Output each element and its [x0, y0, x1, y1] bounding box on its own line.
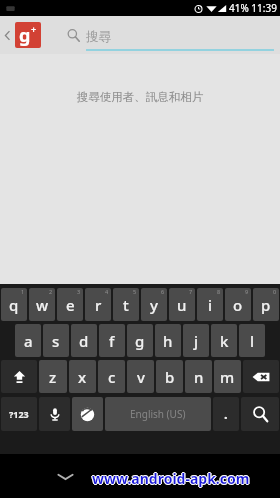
- staticText: h: [163, 331, 173, 351]
- staticText: b: [165, 367, 175, 387]
- button[interactable]: 6: [141, 288, 167, 321]
- button[interactable]: 4: [85, 288, 111, 321]
- button[interactable]: d: [71, 324, 97, 357]
- button[interactable]: English (US): [105, 397, 211, 431]
- staticText: i: [208, 295, 213, 315]
- button[interactable]: x: [69, 360, 96, 393]
- staticText: p: [261, 295, 271, 315]
- button[interactable]: 1: [1, 288, 27, 321]
- staticText: +: [31, 23, 37, 35]
- button[interactable]: ?123: [1, 397, 37, 431]
- staticText: English (US): [130, 407, 186, 421]
- staticText: u: [177, 295, 187, 315]
- button[interactable]: c: [98, 360, 125, 393]
- button[interactable]: v: [127, 360, 154, 393]
- button[interactable]: l: [239, 324, 265, 357]
- button[interactable]: 0: [253, 288, 279, 321]
- button[interactable]: 9: [225, 288, 251, 321]
- staticText: z: [49, 367, 57, 387]
- staticText: g: [19, 23, 31, 48]
- staticText: 9: [245, 288, 249, 295]
- staticText: d: [79, 331, 89, 351]
- staticText: 41% 11:39: [229, 1, 277, 15]
- button[interactable]: Hide keyboard: [50, 461, 80, 491]
- staticText: 4: [105, 288, 109, 295]
- button[interactable]: 8: [197, 288, 223, 321]
- staticText: ?123: [9, 408, 29, 420]
- button[interactable]: 5: [113, 288, 139, 321]
- staticText: 搜尋: [86, 29, 111, 45]
- button[interactable]: g: [127, 324, 153, 357]
- staticText: o: [233, 295, 243, 315]
- staticText: y: [150, 295, 158, 315]
- staticText: 8: [217, 288, 221, 295]
- staticText: r: [95, 295, 102, 315]
- staticText: 2: [49, 288, 53, 295]
- staticText: f: [109, 331, 115, 351]
- button[interactable]: Voice input: [39, 397, 70, 431]
- staticText: 7: [189, 288, 193, 295]
- staticText: www.android-apk.com: [92, 469, 250, 488]
- staticText: www.android-apk.com: [92, 468, 250, 487]
- staticText: www.android-apk.com: [91, 469, 249, 488]
- staticText: v: [137, 367, 145, 387]
- staticText: j: [194, 331, 199, 351]
- button[interactable]: z: [39, 360, 67, 393]
- staticText: www.android-apk.com: [93, 469, 251, 488]
- staticText: s: [52, 331, 60, 351]
- button[interactable]: h: [155, 324, 181, 357]
- button[interactable]: Google Plus: [15, 22, 41, 48]
- staticText: .: [224, 405, 228, 423]
- staticText: www.android-apk.com: [92, 470, 250, 489]
- button[interactable]: j: [183, 324, 209, 357]
- button[interactable]: b: [156, 360, 183, 393]
- staticText: c: [108, 367, 116, 387]
- button[interactable]: Back: [0, 16, 15, 54]
- button[interactable]: n: [185, 360, 212, 393]
- staticText: x: [78, 367, 87, 387]
- button[interactable]: .: [213, 397, 239, 431]
- button[interactable]: Backspace: [243, 360, 279, 393]
- staticText: a: [24, 331, 33, 351]
- staticText: q: [9, 295, 19, 315]
- button[interactable]: k: [211, 324, 237, 357]
- staticText: k: [220, 331, 229, 351]
- button[interactable]: 2: [29, 288, 55, 321]
- staticText: n: [194, 367, 204, 387]
- staticText: 0: [273, 288, 277, 295]
- button[interactable]: a: [15, 324, 41, 357]
- staticText: m: [220, 367, 235, 387]
- staticText: t: [123, 295, 129, 315]
- button[interactable]: Shift: [1, 360, 37, 393]
- button[interactable]: Search: [64, 26, 82, 44]
- staticText: w: [36, 295, 49, 315]
- staticText: 6: [161, 288, 165, 295]
- button[interactable]: f: [99, 324, 125, 357]
- staticText: g: [135, 331, 145, 351]
- staticText: e: [66, 295, 75, 315]
- staticText: 搜尋使用者、訊息和相片: [0, 90, 280, 104]
- button[interactable]: m: [214, 360, 241, 393]
- button[interactable]: Change language: [72, 397, 103, 431]
- staticText: 5: [133, 288, 137, 295]
- button[interactable]: Search: [241, 397, 279, 431]
- button[interactable]: 7: [169, 288, 195, 321]
- button[interactable]: 3: [57, 288, 83, 321]
- button[interactable]: s: [43, 324, 69, 357]
- staticText: 3: [77, 288, 81, 295]
- staticText: 1: [21, 288, 25, 295]
- staticText: l: [250, 331, 255, 351]
